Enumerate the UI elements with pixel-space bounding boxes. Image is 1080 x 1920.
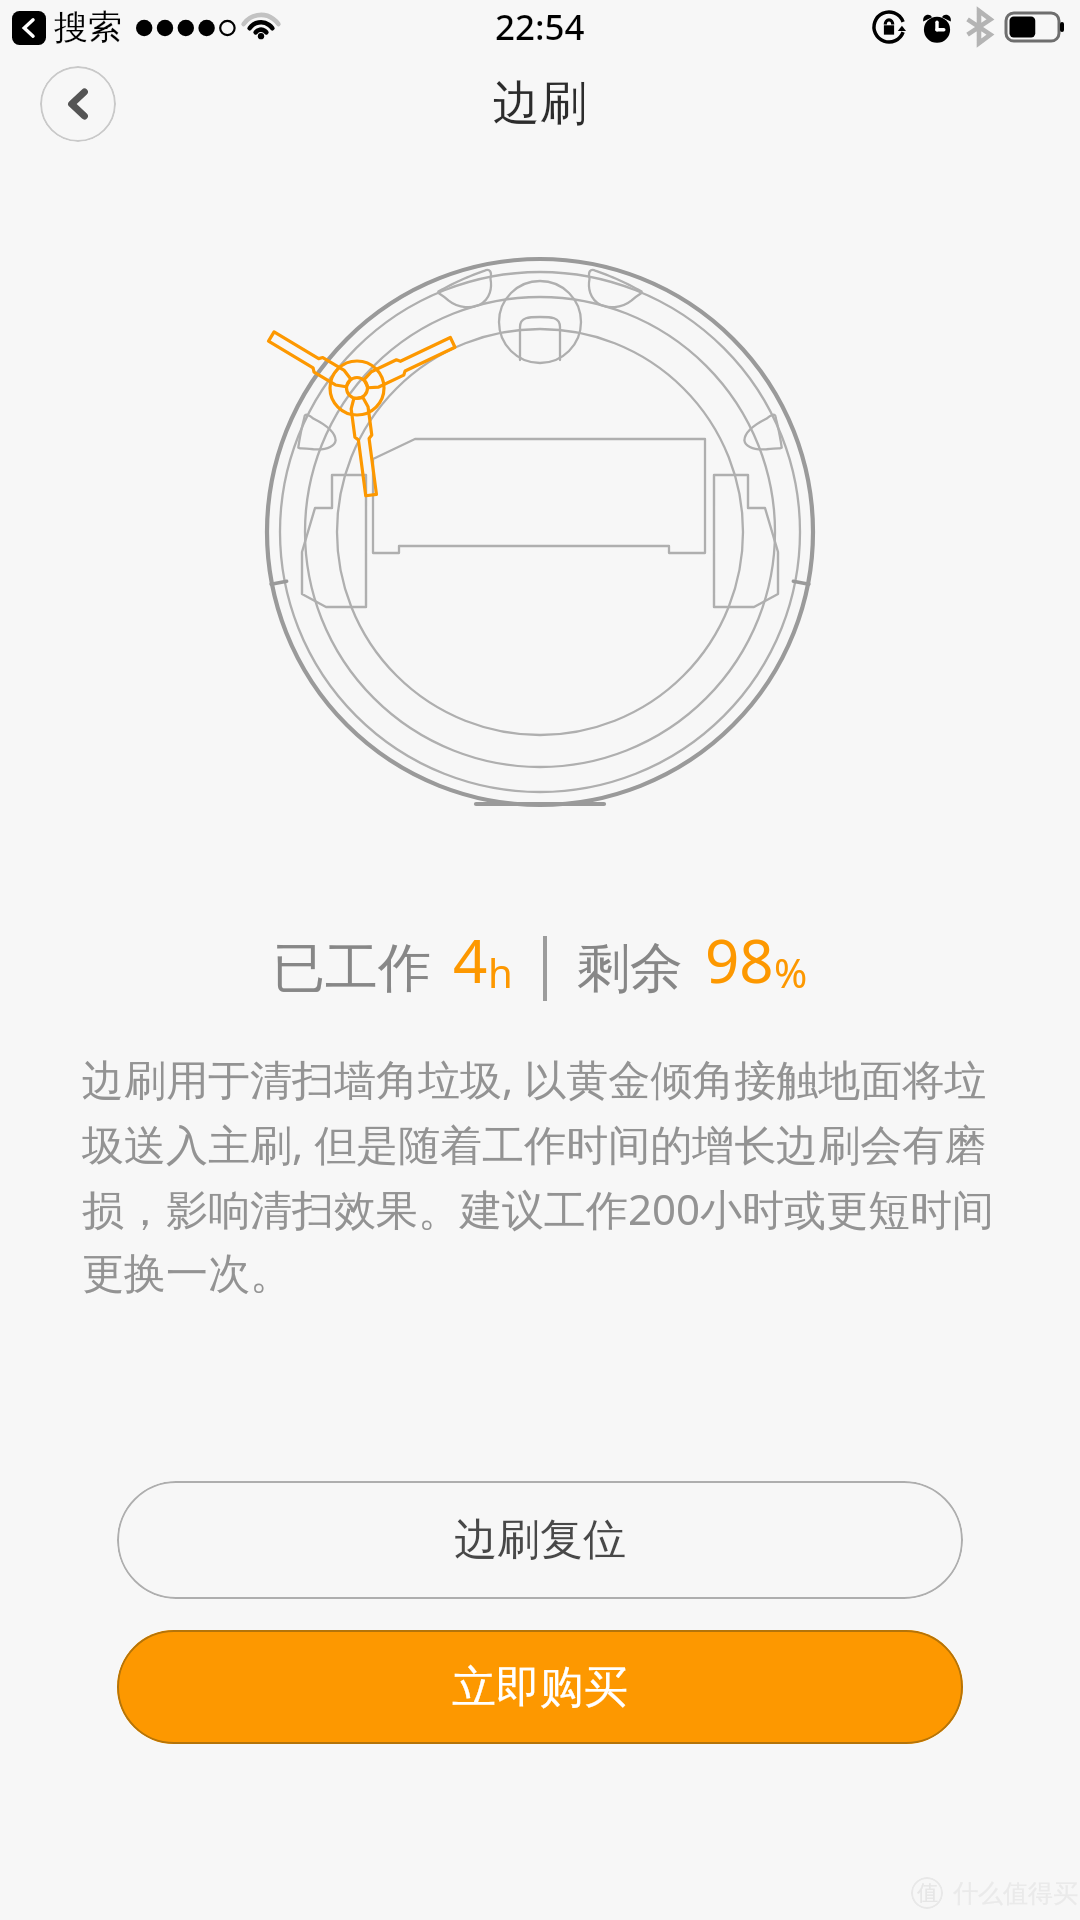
staticText: 搜索 (54, 6, 122, 49)
staticText: 值 (917, 1880, 938, 1906)
staticText: h (488, 945, 513, 999)
staticText: 剩余 (577, 935, 683, 1002)
staticText: 98 (705, 919, 774, 1001)
staticText: 边刷 (493, 74, 587, 133)
staticText: 边刷用于清扫墙角垃圾, 以黄金倾角接触地面将垃圾送入主刷, 但是随着工作时间的增… (82, 1050, 1012, 1301)
button[interactable]: 立即购买 (117, 1630, 963, 1744)
staticText: 已工作 (272, 935, 431, 1002)
staticText: 4 (453, 919, 488, 1001)
staticText: 22:54 (495, 3, 585, 51)
staticText: 立即购买 (452, 1660, 628, 1715)
staticText: 什么值得买 (953, 1878, 1078, 1909)
button[interactable]: Back (40, 66, 116, 142)
staticText: % (774, 945, 808, 999)
button[interactable]: 边刷复位 (117, 1481, 963, 1599)
button[interactable]: 搜索 (12, 6, 122, 49)
staticText: 边刷复位 (454, 1513, 626, 1567)
